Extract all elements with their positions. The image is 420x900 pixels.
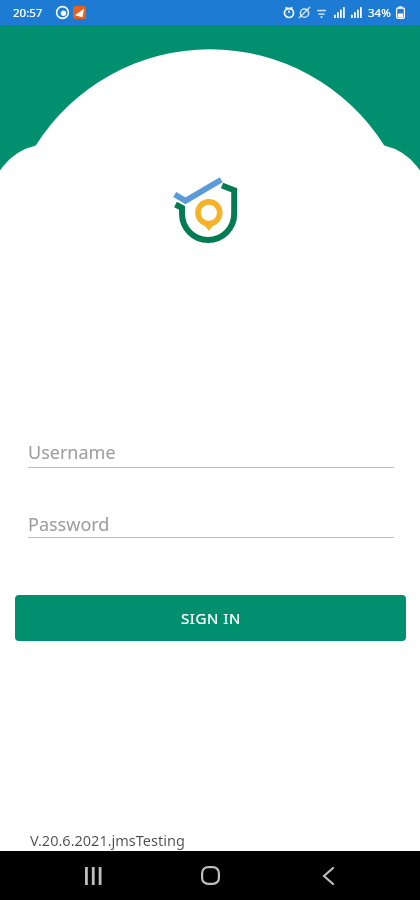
staticText: 34% [368,5,391,21]
button[interactable]: Recents [73,851,113,900]
staticText: Password [28,512,110,537]
staticText: SIGN IN [181,608,241,628]
button[interactable]: SIGN IN [15,595,406,641]
button[interactable]: Back [308,851,348,900]
staticText: Username [28,440,116,465]
staticText: 20:57 [13,5,43,21]
staticText: V.20.6.2021.jmsTesting [30,830,185,850]
button[interactable]: Home [190,851,230,900]
